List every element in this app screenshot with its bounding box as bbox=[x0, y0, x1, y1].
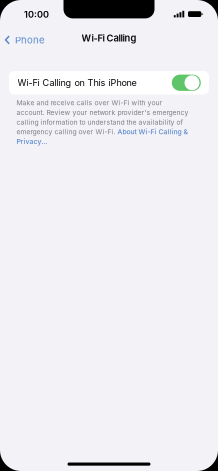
staticText: Make and receive calls over Wi-Fi with y… bbox=[16, 99, 162, 107]
staticText: Wi-Fi Calling bbox=[81, 33, 136, 44]
button[interactable]: Wi-Fi Calling on This iPhone bbox=[172, 75, 201, 91]
staticText: About Wi-Fi Calling & bbox=[117, 128, 187, 136]
staticText: Privacy... bbox=[16, 137, 47, 146]
staticText: Phone bbox=[15, 34, 45, 46]
staticText: 10:00 bbox=[24, 9, 49, 20]
staticText: calling information to understand the av… bbox=[16, 118, 183, 126]
button[interactable]: Make and receive calls over Wi-Fi with y… bbox=[16, 99, 192, 146]
button[interactable]: Phone bbox=[0, 29, 51, 51]
staticText: emergency calling over Wi-Fi. bbox=[16, 128, 117, 136]
staticText: Wi-Fi Calling on This iPhone bbox=[18, 77, 137, 88]
staticText: account. Review your network provider's … bbox=[16, 108, 188, 116]
